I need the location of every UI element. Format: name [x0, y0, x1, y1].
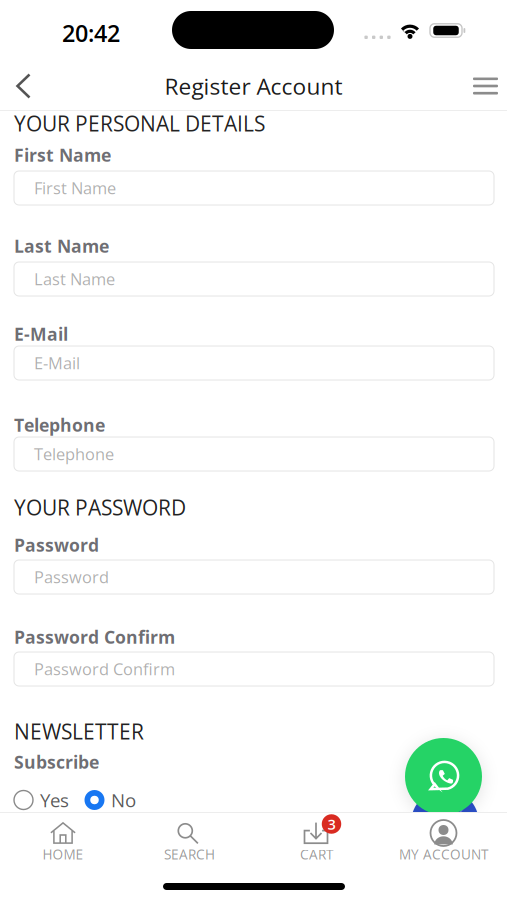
button[interactable]: Yes	[14, 788, 69, 812]
button[interactable]: MY ACCOUNT	[380, 813, 507, 867]
staticText: 20:42	[62, 17, 120, 49]
staticText: YOUR PERSONAL DETAILS	[14, 109, 265, 137]
staticText: SEARCH	[164, 845, 215, 863]
staticText: Last Name	[34, 268, 115, 290]
staticText: First Name	[14, 143, 111, 167]
staticText: MY ACCOUNT	[399, 845, 488, 863]
staticText: HOME	[42, 845, 83, 863]
button[interactable]: Password	[14, 560, 494, 594]
staticText: 3	[327, 814, 335, 834]
button[interactable]: Menu	[467, 62, 504, 110]
staticText: Last Name	[14, 234, 109, 258]
staticText: Telephone	[34, 443, 114, 465]
staticText: Password Confirm	[34, 658, 175, 680]
button[interactable]: 3	[253, 813, 380, 867]
staticText: CART	[300, 845, 333, 863]
button[interactable]: Last Name	[14, 262, 494, 296]
button[interactable]: Password Confirm	[14, 652, 494, 686]
button[interactable]: First Name	[14, 171, 494, 205]
button[interactable]: WhatsApp	[405, 738, 482, 815]
staticText: First Name	[34, 177, 116, 199]
button[interactable]: No	[85, 788, 136, 812]
button[interactable]: Back	[4, 62, 46, 110]
button[interactable]: Telephone	[14, 437, 494, 471]
staticText: E-Mail	[34, 352, 80, 374]
staticText: NEWSLETTER	[14, 717, 144, 745]
staticText: Password	[14, 533, 99, 557]
staticText: Telephone	[14, 413, 105, 437]
staticText: E-Mail	[14, 322, 68, 346]
button[interactable]: E-Mail	[14, 346, 494, 380]
staticText: YOUR PASSWORD	[14, 493, 186, 521]
staticText: Yes	[40, 787, 69, 813]
staticText: Password Confirm	[14, 625, 175, 649]
staticText: Password	[34, 566, 109, 588]
staticText: No	[111, 787, 136, 813]
button[interactable]: HOME	[0, 813, 126, 867]
staticText: Subscribe	[14, 750, 99, 774]
button[interactable]: SEARCH	[126, 813, 253, 867]
staticText: Register Account	[164, 71, 342, 101]
button[interactable]: Messenger	[411, 789, 479, 857]
